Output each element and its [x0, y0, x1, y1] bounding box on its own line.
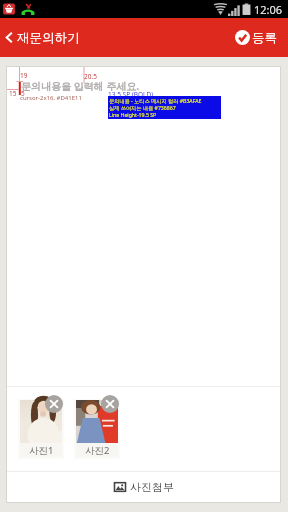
staticText: Line Height-19.5 SP — [109, 111, 157, 118]
button[interactable]: 사진첨부 — [7, 472, 280, 502]
staticText: 5 — [21, 89, 25, 98]
staticText: 문의내용 - 노티스 메시지 컬러 #B3AFAE — [109, 97, 202, 104]
button[interactable]: 등록 — [229, 18, 288, 57]
staticText: 20.5 — [84, 72, 97, 81]
staticText: 15 — [9, 89, 17, 98]
button[interactable]: Back — [0, 18, 86, 57]
staticText: 문의내용을 입력해 주세요. — [21, 79, 140, 93]
staticText: 13.5 SP (BOLD) — [108, 90, 154, 99]
staticText: cursor-2x16, #D41E11 — [20, 94, 82, 102]
button[interactable]: 사진2 — [76, 400, 118, 457]
button[interactable]: 사진1 — [20, 400, 62, 457]
staticText: 실제 쓰여지는 내용 #736867 — [109, 104, 176, 111]
staticText: 사진2 — [85, 444, 110, 457]
button[interactable]: Remove photo 2 — [101, 395, 119, 413]
staticText: 등록 — [252, 30, 277, 46]
button[interactable]: Remove photo 1 — [45, 395, 63, 413]
staticText: 12:06 — [254, 2, 283, 17]
staticText: 사진첨부 — [130, 480, 174, 494]
staticText: 19 — [20, 71, 28, 80]
other: Back — [3, 31, 16, 44]
staticText: 사진1 — [29, 444, 54, 457]
staticText: 재문의하기 — [17, 30, 80, 46]
